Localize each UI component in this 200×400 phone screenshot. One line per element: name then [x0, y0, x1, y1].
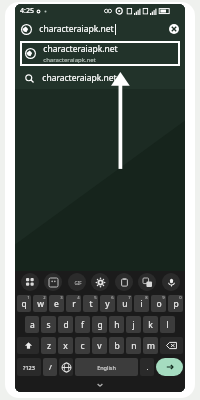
button[interactable]: Apps: [21, 273, 39, 291]
staticText: d: [63, 319, 69, 331]
staticText: r: [72, 298, 76, 310]
staticText: q: [21, 298, 27, 310]
button[interactable]: Backspace: [160, 337, 183, 354]
button[interactable]: c: [75, 337, 90, 354]
button[interactable]: q: [17, 295, 31, 312]
staticText: 7: [128, 295, 131, 301]
staticText: 5: [94, 295, 97, 301]
staticText: e: [54, 298, 59, 310]
staticText: 9: [162, 295, 165, 301]
staticText: .: [146, 362, 149, 372]
button[interactable]: characteraiapk.net: [20, 41, 180, 66]
staticText: 1: [27, 295, 30, 301]
staticText: n: [131, 340, 137, 352]
staticText: j: [132, 319, 135, 331]
staticText: s: [46, 319, 51, 331]
button[interactable]: i: [134, 295, 149, 312]
staticText: p: [173, 298, 179, 310]
staticText: GIF: [74, 280, 82, 286]
button[interactable]: e: [49, 295, 64, 312]
staticText: characteraiapk.net: [39, 23, 114, 35]
button[interactable]: s: [41, 316, 56, 333]
staticText: k: [148, 319, 153, 331]
button[interactable]: y: [100, 295, 115, 312]
button[interactable]: g: [92, 316, 107, 333]
staticText: 4: [77, 295, 80, 301]
staticText: v: [97, 340, 102, 352]
staticText: f: [81, 319, 84, 331]
button[interactable]: f: [75, 316, 90, 333]
button[interactable]: o: [151, 295, 166, 312]
button[interactable]: GIF: [68, 273, 86, 291]
staticText: i: [140, 298, 143, 310]
button[interactable]: h: [109, 316, 124, 333]
button[interactable]: r: [66, 295, 81, 312]
button[interactable]: x: [58, 337, 73, 354]
button[interactable]: k: [143, 316, 158, 333]
staticText: u: [122, 298, 128, 310]
button[interactable]: characteraiapk.net: [15, 67, 185, 89]
staticText: b: [114, 340, 120, 352]
staticText: t: [89, 298, 93, 310]
button[interactable]: English: [75, 358, 138, 376]
staticText: w: [37, 298, 44, 310]
button[interactable]: Clear: [169, 24, 179, 34]
staticText: o: [156, 298, 162, 310]
button[interactable]: Stickers: [44, 273, 62, 291]
button[interactable]: .: [140, 358, 154, 376]
staticText: characteraiapk.net: [43, 56, 96, 64]
button[interactable]: t: [83, 295, 98, 312]
staticText: y: [105, 298, 110, 310]
button[interactable]: j: [126, 316, 141, 333]
button[interactable]: Clipboard: [115, 273, 133, 291]
button[interactable]: u: [117, 295, 132, 312]
button[interactable]: Voice input: [162, 273, 180, 291]
button[interactable]: characteraiapk.net: [15, 18, 185, 40]
staticText: c: [80, 340, 85, 352]
button[interactable]: a: [25, 316, 39, 333]
button[interactable]: n: [126, 337, 141, 354]
button[interactable]: Change language: [59, 358, 73, 376]
button[interactable]: v: [92, 337, 107, 354]
staticText: /: [49, 362, 52, 372]
button[interactable]: w: [33, 295, 47, 312]
staticText: x: [63, 340, 68, 352]
button[interactable]: Settings: [91, 273, 109, 291]
staticText: characteraiapk.net: [43, 43, 118, 55]
staticText: a: [30, 319, 35, 331]
button[interactable]: Translate: [138, 273, 156, 291]
button[interactable]: /: [43, 358, 57, 376]
staticText: 3: [60, 295, 63, 301]
button[interactable]: p: [168, 295, 183, 312]
button[interactable]: Hide keyboard: [87, 378, 113, 391]
staticText: z: [47, 340, 51, 352]
staticText: 2: [43, 295, 46, 301]
button[interactable]: b: [109, 337, 124, 354]
staticText: g: [97, 319, 103, 331]
button[interactable]: m: [143, 337, 158, 354]
staticText: 8: [145, 295, 148, 301]
staticText: 4:25: [20, 6, 34, 16]
button[interactable]: ?123: [17, 358, 41, 376]
button[interactable]: Shift: [17, 337, 39, 354]
staticText: m: [147, 340, 155, 352]
staticText: h: [114, 319, 120, 331]
button[interactable]: z: [41, 337, 56, 354]
staticText: English: [97, 364, 116, 371]
staticText: ?123: [23, 364, 35, 371]
button[interactable]: l: [160, 316, 175, 333]
button[interactable]: d: [58, 316, 73, 333]
staticText: 6: [111, 295, 114, 301]
staticText: 0: [179, 295, 182, 301]
staticText: characteraiapk.net: [42, 72, 117, 84]
button[interactable]: Go: [156, 358, 183, 376]
staticText: l: [166, 319, 169, 331]
